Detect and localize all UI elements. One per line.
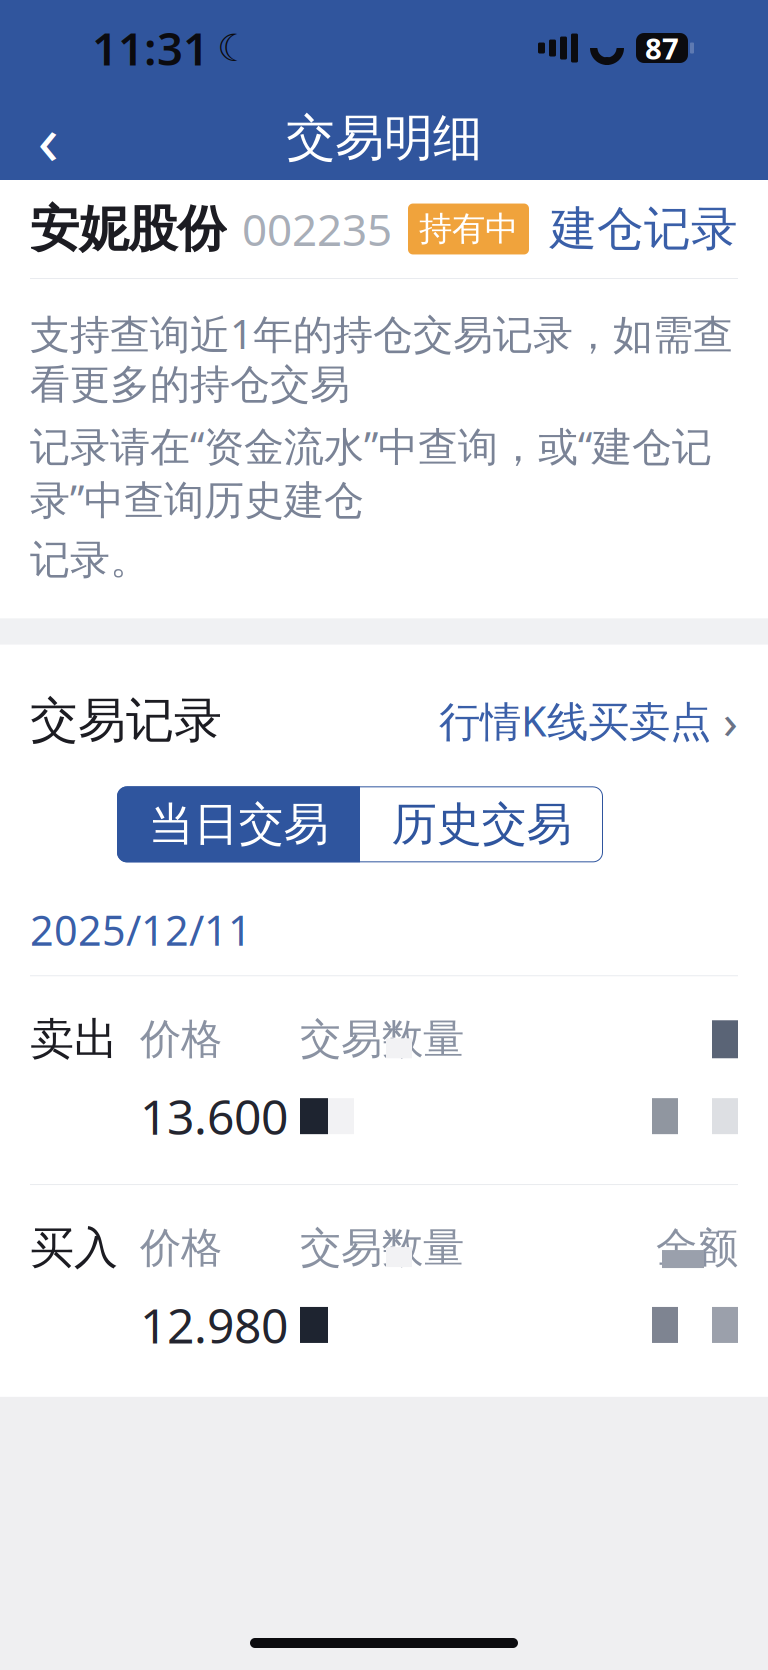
staticText: 安妮股份 bbox=[30, 199, 226, 259]
button[interactable]: 返回 bbox=[0, 96, 96, 180]
staticText: 记录。 bbox=[30, 535, 150, 585]
staticText: 支持查询近1年的持仓交易记录，如需查看更多的持仓交易 bbox=[30, 307, 733, 409]
staticText: 卖出 bbox=[30, 1012, 118, 1066]
staticText: 13.600 bbox=[140, 1084, 288, 1148]
button[interactable]: 行情K线买卖点 bbox=[439, 689, 738, 752]
staticText: 11:31 bbox=[92, 18, 209, 78]
staticText: 交易数量 bbox=[300, 1223, 464, 1273]
staticText: › bbox=[723, 689, 738, 752]
staticText: 建仓记录 bbox=[550, 200, 738, 258]
button[interactable]: 建仓记录 bbox=[550, 200, 738, 258]
staticText: 87 bbox=[645, 28, 679, 67]
staticText: 记录请在“资金流水”中查询，或“建仓记录”中查询历史建仓 bbox=[30, 419, 712, 525]
staticText: ‹ bbox=[37, 92, 58, 184]
staticText: 历史交易 bbox=[391, 796, 571, 852]
staticText: 买入 bbox=[30, 1221, 118, 1275]
staticText: 价格 bbox=[140, 1014, 222, 1065]
staticText: 2025/12/11 bbox=[30, 902, 252, 957]
staticText: 价格 bbox=[140, 1223, 222, 1273]
staticText: 12.980 bbox=[140, 1293, 288, 1357]
staticText: 当日交易 bbox=[148, 796, 328, 852]
staticText: 交易明细 bbox=[286, 108, 482, 168]
staticText: 002235 bbox=[242, 200, 392, 258]
staticText: ☾ bbox=[217, 27, 250, 69]
button[interactable]: 当日交易 bbox=[117, 786, 360, 862]
staticText: 交易数量 bbox=[300, 1014, 464, 1065]
staticText: 金额 bbox=[656, 1223, 738, 1273]
staticText: 持有中 bbox=[419, 208, 518, 249]
staticText: 行情K线买卖点 bbox=[439, 693, 711, 748]
button[interactable]: 历史交易 bbox=[360, 786, 603, 862]
staticText: 交易记录 bbox=[30, 691, 222, 750]
